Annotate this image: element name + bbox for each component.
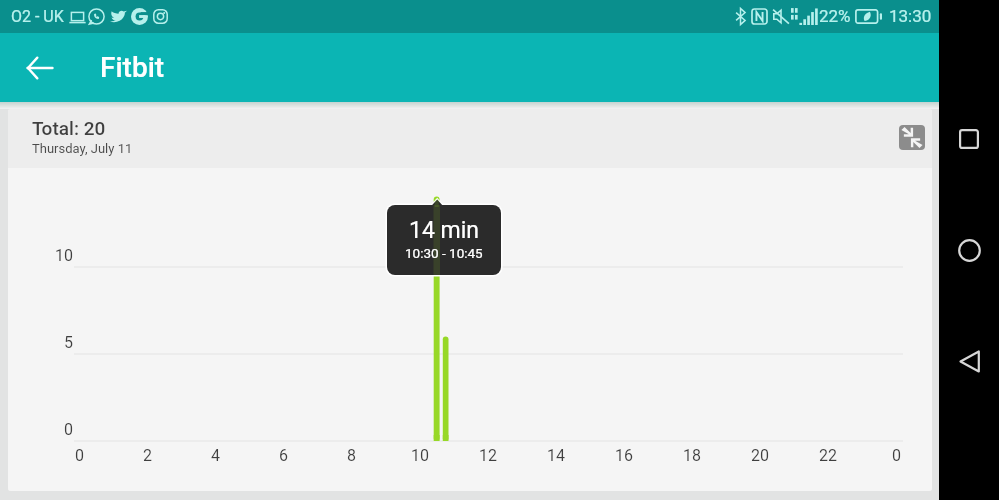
staticText: 20 bbox=[751, 446, 769, 465]
staticText: Total: 20 bbox=[32, 117, 106, 139]
button[interactable]: Back bbox=[14, 43, 64, 93]
staticText: 0 bbox=[75, 446, 84, 465]
staticText: 5 bbox=[64, 333, 73, 352]
staticText: Fitbit bbox=[100, 51, 165, 84]
staticText: 2 bbox=[143, 446, 152, 465]
staticText: 16 bbox=[615, 446, 633, 465]
staticText: 4 bbox=[211, 446, 220, 465]
staticText: 13:30 bbox=[889, 6, 932, 26]
button[interactable]: Recents bbox=[943, 113, 995, 165]
staticText: 14 min bbox=[409, 217, 480, 244]
staticText: 10:30 - 10:45 bbox=[405, 245, 483, 261]
button[interactable]: Home bbox=[943, 224, 995, 276]
staticText: 0 bbox=[64, 420, 73, 439]
staticText: 8 bbox=[347, 446, 356, 465]
staticText: 12 bbox=[479, 446, 497, 465]
staticText: 6 bbox=[279, 446, 288, 465]
staticText: Thursday, July 11 bbox=[32, 141, 133, 156]
staticText: 18 bbox=[683, 446, 701, 465]
staticText: 22% bbox=[819, 6, 851, 26]
staticText: O2 - UK bbox=[11, 7, 64, 26]
button[interactable]: 14 min bbox=[387, 205, 501, 275]
staticText: 14 bbox=[547, 446, 565, 465]
staticText: 10 bbox=[411, 446, 429, 465]
button[interactable]: Back bbox=[943, 335, 995, 387]
staticText: 0 bbox=[892, 446, 901, 465]
button[interactable]: Exit fullscreen bbox=[899, 125, 925, 150]
staticText: 22 bbox=[819, 446, 837, 465]
staticText: 10 bbox=[55, 246, 73, 265]
